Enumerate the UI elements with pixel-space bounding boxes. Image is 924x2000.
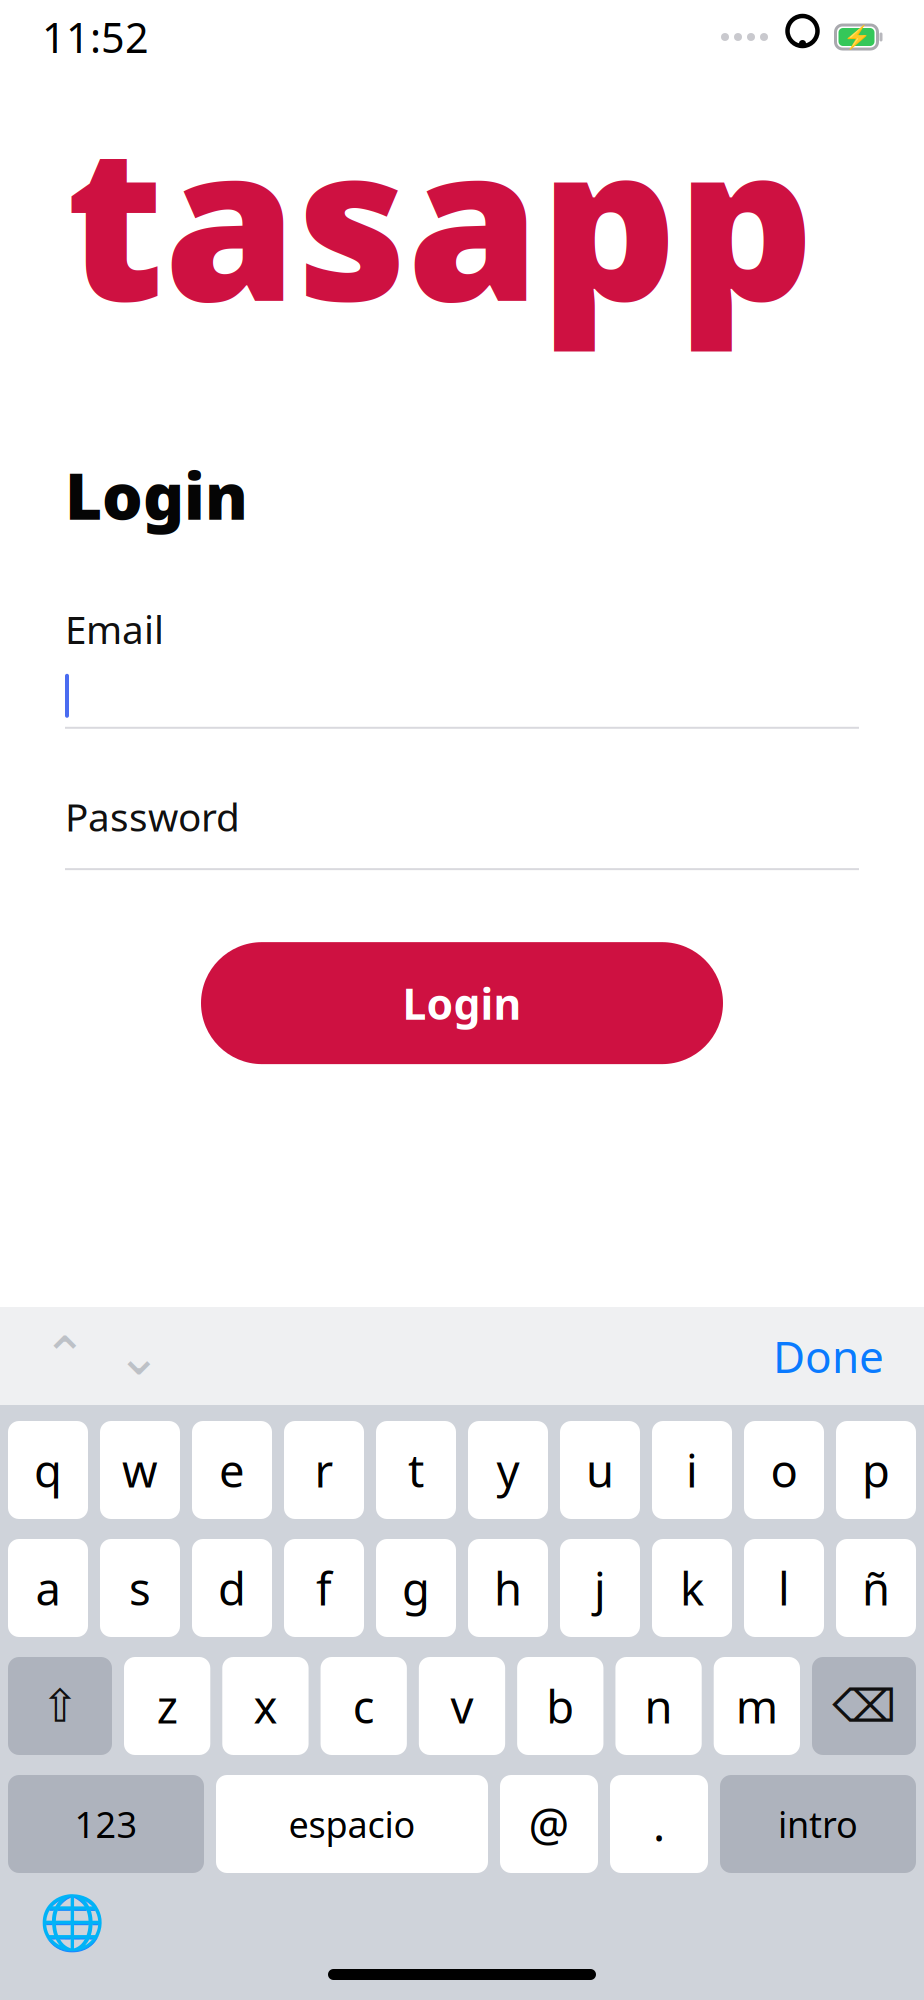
staticText: e [219,1440,245,1500]
button[interactable]: Shift [8,1657,112,1755]
staticText: y [496,1440,519,1500]
button[interactable]: espacio [216,1775,488,1873]
staticText: a [35,1558,60,1618]
staticText: k [680,1558,704,1618]
button[interactable]: n [615,1657,702,1755]
staticText: l [778,1558,790,1618]
staticText: c [353,1676,375,1736]
button[interactable]: d [192,1539,272,1637]
staticText: m [736,1676,778,1736]
button[interactable]: c [321,1657,407,1755]
staticText: q [34,1440,62,1500]
staticText: 123 [74,1800,137,1848]
staticText: z [157,1676,178,1736]
staticText: tasapp [66,76,814,359]
button[interactable]: v [419,1657,505,1755]
staticText: Done [773,1327,884,1385]
button[interactable]: ñ [836,1539,916,1637]
button[interactable]: Delete [812,1657,916,1755]
button[interactable]: i [652,1421,732,1519]
button[interactable]: s [100,1539,180,1637]
staticText: espacio [288,1800,415,1848]
button[interactable]: m [714,1657,800,1755]
button[interactable]: l [744,1539,824,1637]
button[interactable]: u [560,1421,640,1519]
staticText: j [594,1558,606,1618]
button[interactable]: k [652,1539,732,1637]
staticText: Login [402,975,521,1031]
button[interactable]: Next keyboard [30,1881,114,1965]
button[interactable]: 123 [8,1775,204,1873]
button[interactable]: Done [761,1318,896,1394]
staticText: ⌄ [116,1326,161,1386]
staticText: ñ [862,1558,890,1618]
staticText: u [586,1440,614,1500]
staticText: ⌃ [42,1326,87,1386]
button[interactable]: e [192,1421,272,1519]
staticText: f [316,1558,332,1618]
staticText: ⇧ [41,1680,79,1732]
button[interactable]: x [222,1657,309,1755]
staticText: ⚡ [842,24,870,50]
button[interactable]: w [100,1421,180,1519]
button[interactable]: q [8,1421,88,1519]
staticText: s [129,1558,151,1618]
button[interactable]: b [517,1657,603,1755]
staticText: t [408,1440,424,1500]
staticText: n [645,1676,673,1736]
staticText: i [686,1440,698,1500]
button[interactable]: p [836,1421,916,1519]
button[interactable]: @ [500,1775,598,1873]
staticText: Email [65,603,164,655]
staticText: intro [778,1800,858,1848]
button[interactable]: h [468,1539,548,1637]
button[interactable]: g [376,1539,456,1637]
staticText: o [770,1440,797,1500]
staticText: r [314,1440,333,1500]
staticText: b [546,1676,574,1736]
button[interactable]: z [124,1657,210,1755]
staticText: d [218,1558,246,1618]
button[interactable]: y [468,1421,548,1519]
staticText: g [402,1558,430,1618]
staticText: p [862,1440,890,1500]
staticText: ⌫ [832,1680,896,1732]
staticText: w [122,1440,158,1500]
staticText: x [253,1676,277,1736]
button[interactable]: Login [201,942,723,1064]
staticText: h [494,1558,522,1618]
staticText: v [450,1676,473,1736]
staticText: 🌐 [39,1892,105,1953]
button[interactable]: j [560,1539,640,1637]
button[interactable]: intro [720,1775,916,1873]
staticText: . [653,1794,665,1854]
staticText: Password [65,791,240,842]
staticText: Login [65,452,248,537]
button[interactable]: t [376,1421,456,1519]
button[interactable]: o [744,1421,824,1519]
button[interactable]: Next field [102,1318,176,1394]
button[interactable]: . [610,1775,708,1873]
button[interactable]: f [284,1539,364,1637]
staticText: 11:52 [42,10,149,64]
button[interactable]: a [8,1539,88,1637]
button[interactable]: Previous field [28,1318,102,1394]
staticText: @ [528,1794,569,1854]
button[interactable]: r [284,1421,364,1519]
